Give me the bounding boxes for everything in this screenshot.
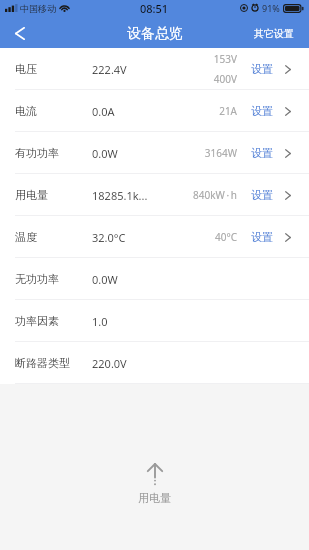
staticText: 其它设置 [254, 27, 294, 40]
staticText: 电流 [15, 104, 37, 118]
staticText: 840kW · h [164, 188, 237, 202]
button[interactable]: Back [0, 19, 40, 48]
staticText: 32.0°C [92, 230, 126, 245]
staticText: 0.0W [92, 272, 118, 287]
staticText: 08:51 [140, 1, 169, 16]
staticText: 18285.1k... [92, 188, 148, 203]
button[interactable]: 电流 [0, 90, 309, 132]
staticText: 中国移动 [20, 3, 56, 14]
button[interactable]: 电压 [0, 48, 309, 90]
button[interactable]: 断路器类型 [0, 342, 309, 384]
button[interactable]: 其它设置 [246, 19, 309, 48]
staticText: 设备总览 [127, 25, 183, 43]
staticText: 无功功率 [15, 272, 59, 286]
staticText: 40°C [164, 230, 237, 244]
button[interactable]: 设置 [251, 104, 273, 118]
button[interactable]: 有功功率 [0, 132, 309, 174]
staticText: 3164W [164, 146, 237, 160]
button[interactable]: 设置 [251, 146, 273, 160]
staticText: 断路器类型 [15, 356, 70, 370]
staticText: 400V [164, 72, 237, 86]
staticText: 温度 [15, 230, 37, 244]
staticText: 设置 [251, 62, 273, 76]
staticText: 222.4V [92, 62, 127, 77]
staticText: 用电量 [138, 491, 171, 505]
button[interactable]: 用电量 [116, 459, 193, 509]
staticText: 设置 [251, 188, 273, 202]
button[interactable]: 无功功率 [0, 258, 309, 300]
staticText: 21A [164, 104, 237, 118]
staticText: 电压 [15, 62, 37, 76]
staticText: 设置 [251, 230, 273, 244]
button[interactable]: 设置 [251, 188, 273, 202]
staticText: 153V [164, 52, 237, 66]
button[interactable]: 功率因素 [0, 300, 309, 342]
staticText: 用电量 [15, 188, 48, 202]
button[interactable]: 设置 [251, 62, 273, 76]
staticText: 0.0A [92, 104, 115, 119]
button[interactable]: 温度 [0, 216, 309, 258]
staticText: 设置 [251, 146, 273, 160]
staticText: 0.0W [92, 146, 118, 161]
staticText: 功率因素 [15, 314, 59, 328]
staticText: 91% [262, 2, 280, 14]
button[interactable]: 用电量 [0, 174, 309, 216]
staticText: 1.0 [92, 314, 108, 329]
button[interactable]: 设置 [251, 230, 273, 244]
staticText: 有功功率 [15, 146, 59, 160]
staticText: 220.0V [92, 356, 127, 371]
staticText: 设置 [251, 104, 273, 118]
